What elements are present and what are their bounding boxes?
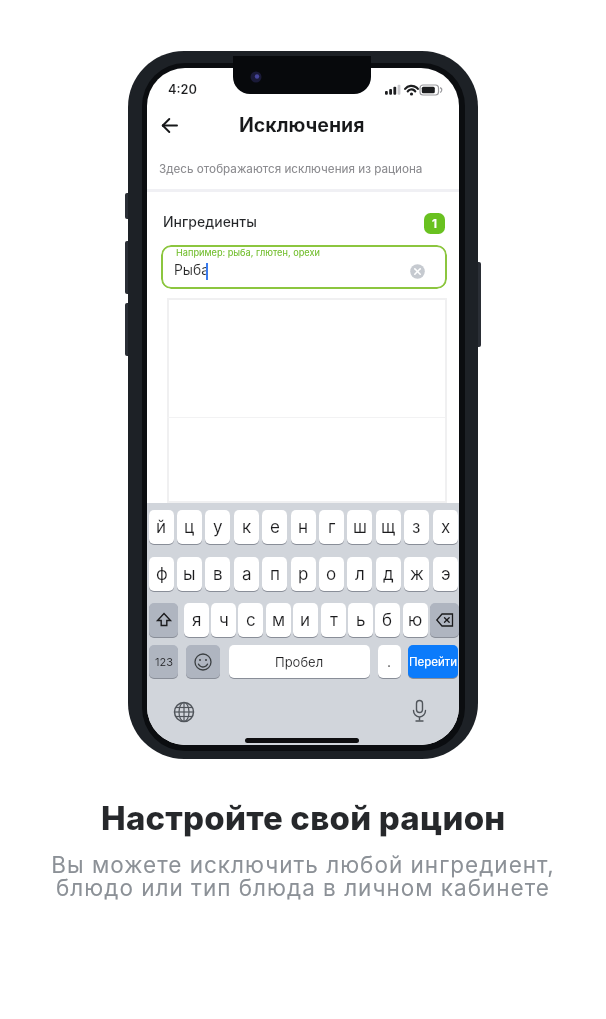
staticText: Настройте свой рацион: [101, 798, 506, 838]
staticText: 123: [155, 655, 173, 668]
staticText: Ингредиенты: [163, 213, 257, 230]
staticText: л: [355, 564, 365, 585]
staticText: х: [441, 517, 451, 538]
button[interactable]: [410, 264, 425, 279]
staticText: ы: [183, 564, 196, 585]
staticText: .: [387, 653, 392, 670]
staticText: н: [298, 517, 309, 538]
staticText: к: [242, 517, 252, 538]
staticText: 1: [432, 216, 438, 231]
staticText: ч: [219, 610, 229, 631]
button[interactable]: Перейти: [408, 645, 458, 678]
button[interactable]: т: [321, 603, 346, 637]
button[interactable]: е: [262, 510, 287, 544]
button[interactable]: ж: [404, 557, 429, 591]
button[interactable]: б: [375, 603, 400, 637]
button[interactable]: 123: [149, 645, 178, 678]
button[interactable]: н: [291, 510, 316, 544]
button[interactable]: [149, 603, 178, 637]
button[interactable]: ф: [149, 557, 174, 591]
button[interactable]: я: [184, 603, 209, 637]
button[interactable]: д: [376, 557, 401, 591]
button[interactable]: л: [347, 557, 372, 591]
button[interactable]: э: [433, 557, 458, 591]
staticText: щ: [381, 517, 396, 538]
staticText: Вы можете исключить любой ингредиент, бл…: [3, 851, 603, 901]
staticText: Перейти: [409, 655, 458, 669]
button[interactable]: у: [205, 510, 230, 544]
staticText: Например: рыба, глютен, орехи: [176, 247, 320, 258]
staticText: я: [192, 610, 202, 631]
button[interactable]: п: [262, 557, 287, 591]
staticText: д: [383, 564, 394, 585]
button[interactable]: й: [149, 510, 174, 544]
button[interactable]: щ: [376, 510, 401, 544]
button[interactable]: в: [205, 557, 230, 591]
button[interactable]: р: [291, 557, 316, 591]
button[interactable]: ь: [348, 603, 373, 637]
button[interactable]: м: [266, 603, 291, 637]
button[interactable]: .: [378, 645, 401, 678]
button[interactable]: [186, 645, 220, 678]
button[interactable]: Пробел: [229, 645, 370, 678]
staticText: е: [270, 517, 280, 538]
button[interactable]: ю: [403, 603, 428, 637]
staticText: ь: [356, 610, 366, 631]
staticText: ц: [184, 517, 195, 538]
button[interactable]: х: [433, 510, 458, 544]
staticText: з: [412, 517, 421, 538]
button[interactable]: [412, 700, 427, 724]
button[interactable]: [161, 245, 447, 289]
button[interactable]: с: [238, 603, 263, 637]
button[interactable]: з: [404, 510, 429, 544]
button[interactable]: ц: [177, 510, 202, 544]
button[interactable]: [162, 118, 178, 133]
staticText: в: [213, 564, 223, 585]
staticText: г: [328, 517, 336, 538]
button[interactable]: и: [293, 603, 318, 637]
staticText: с: [246, 610, 256, 631]
staticText: а: [242, 564, 252, 585]
button[interactable]: ч: [211, 603, 236, 637]
staticText: Рыба: [174, 262, 209, 279]
staticText: т: [330, 610, 338, 631]
staticText: й: [156, 517, 167, 538]
staticText: ф: [156, 564, 168, 585]
staticText: о: [326, 564, 337, 585]
button[interactable]: а: [234, 557, 259, 591]
staticText: э: [441, 564, 451, 585]
staticText: и: [300, 610, 311, 631]
staticText: р: [298, 564, 309, 585]
button[interactable]: к: [234, 510, 259, 544]
staticText: Здесь отображаются исключения из рациона: [159, 162, 423, 176]
button[interactable]: г: [319, 510, 344, 544]
staticText: Пробел: [275, 654, 324, 670]
staticText: 4:20: [168, 82, 198, 97]
button[interactable]: [430, 603, 459, 637]
staticText: у: [213, 517, 223, 538]
staticText: ш: [353, 517, 367, 538]
staticText: б: [382, 610, 393, 631]
staticText: м: [272, 610, 286, 631]
button[interactable]: ш: [347, 510, 372, 544]
staticText: ж: [410, 564, 424, 585]
button[interactable]: о: [319, 557, 344, 591]
button[interactable]: [173, 701, 195, 723]
staticText: Исключения: [239, 113, 365, 137]
staticText: ю: [408, 610, 423, 631]
button[interactable]: ы: [177, 557, 202, 591]
staticText: п: [270, 564, 280, 585]
